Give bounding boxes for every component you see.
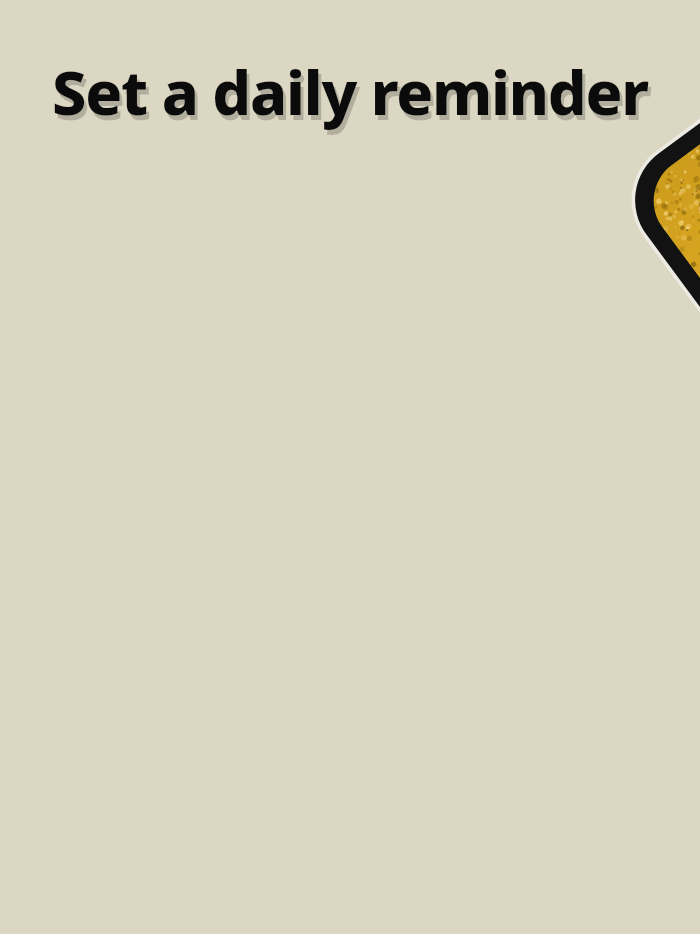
button[interactable]: Set a daily reminder promotional screen xyxy=(0,0,700,934)
